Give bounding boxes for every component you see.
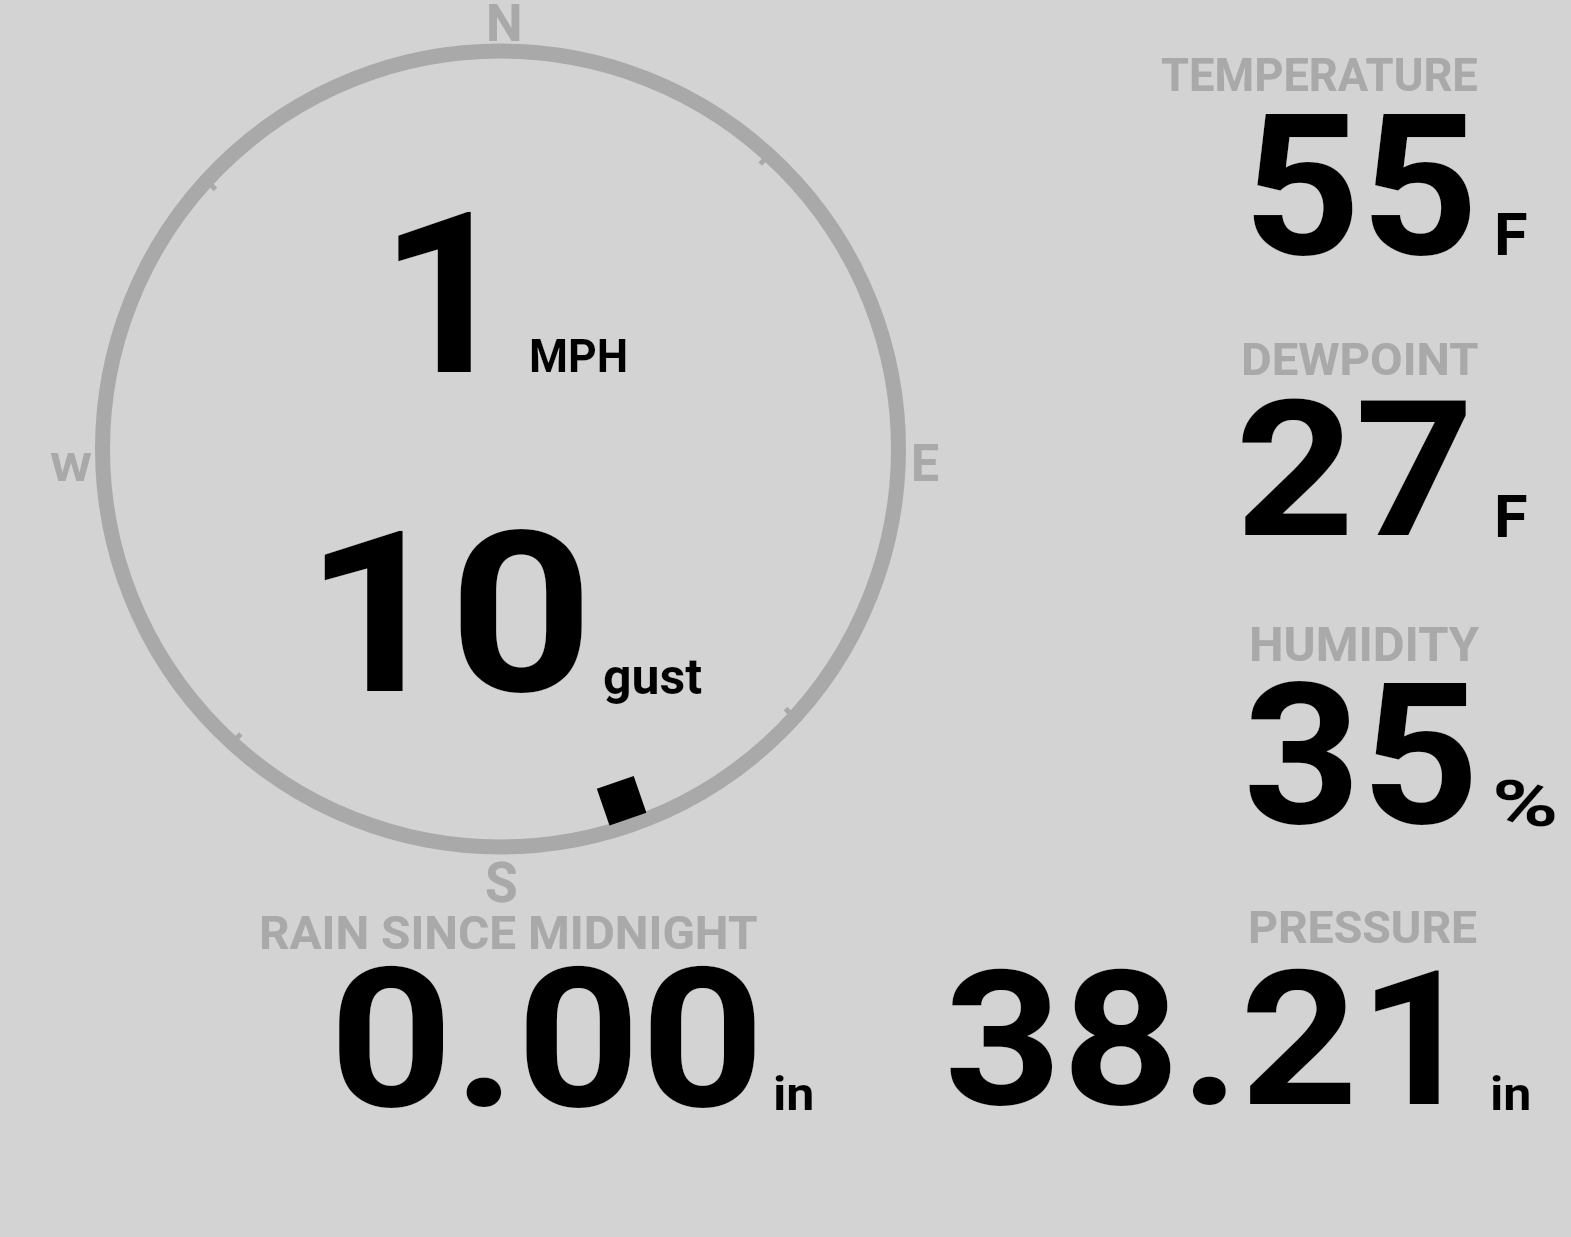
staticText: DEWPOINT — [1241, 333, 1479, 386]
staticText: W — [50, 446, 93, 491]
button[interactable] — [940, 903, 1540, 1118]
staticText: % — [1492, 766, 1558, 842]
staticText: F — [1494, 483, 1529, 551]
staticText: in — [1490, 1067, 1532, 1121]
staticText: HUMIDITY — [1249, 617, 1479, 673]
button[interactable] — [1150, 614, 1565, 839]
staticText: 35 — [1243, 641, 1480, 871]
staticText: PRESSURE — [1248, 901, 1478, 954]
staticText: 1 — [379, 163, 514, 426]
button[interactable] — [325, 195, 635, 390]
button[interactable]: Wind direction dial — [95, 44, 906, 855]
staticText: F — [1494, 201, 1529, 269]
button[interactable] — [315, 515, 705, 710]
staticText: N — [486, 0, 523, 53]
button[interactable] — [1150, 45, 1565, 270]
button[interactable] — [1150, 330, 1565, 550]
staticText: TEMPERATURE — [1161, 48, 1478, 102]
staticText: E — [911, 433, 939, 493]
staticText: 55 — [1243, 71, 1479, 302]
staticText: RAIN SINCE MIDNIGHT — [259, 906, 758, 960]
staticText: in — [773, 1067, 815, 1121]
staticText: 27 — [1235, 359, 1475, 581]
staticText: 10 — [304, 483, 594, 746]
staticText: gust — [603, 647, 703, 706]
staticText: MPH — [529, 330, 629, 383]
button[interactable] — [255, 903, 820, 1118]
staticText: 0.00 — [329, 925, 765, 1153]
staticText: S — [485, 850, 518, 915]
staticText: 38.21 — [944, 930, 1477, 1150]
